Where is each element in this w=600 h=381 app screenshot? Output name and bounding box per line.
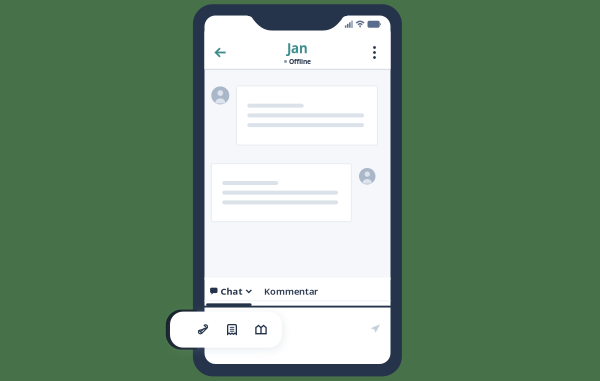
button[interactable]: Chat: [204, 284, 257, 299]
button[interactable]: Kommentar: [257, 284, 325, 299]
staticText: Kommentar: [264, 285, 318, 297]
button[interactable]: Send: [365, 318, 385, 338]
button[interactable]: Back: [209, 41, 231, 63]
button[interactable]: Jan: [284, 40, 311, 64]
button[interactable]: Attach file: [188, 312, 217, 348]
staticText: Offline: [289, 57, 311, 66]
button[interactable]: Knowledge base: [246, 312, 275, 348]
staticText: Jan: [287, 39, 308, 57]
button[interactable]: Attach document: [217, 312, 246, 348]
staticText: Chat: [220, 285, 242, 297]
button[interactable]: More options: [363, 41, 385, 63]
